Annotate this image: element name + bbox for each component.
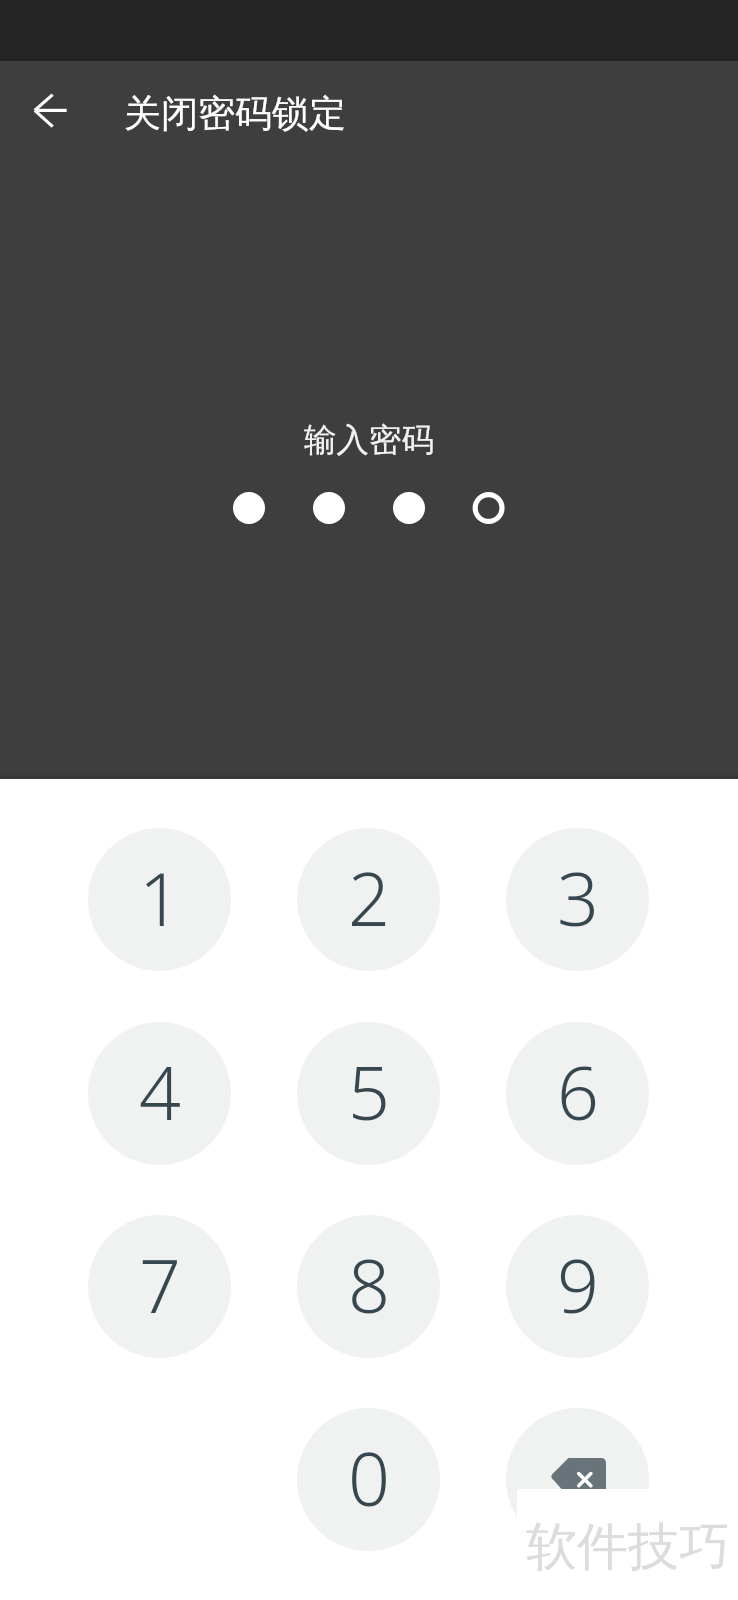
staticText: 7 (139, 1234, 181, 1334)
button[interactable]: 9 (506, 1215, 649, 1358)
button[interactable]: 6 (506, 1022, 649, 1165)
staticText: 4 (139, 1041, 181, 1141)
staticText: 2 (348, 847, 390, 947)
button[interactable]: 8 (297, 1215, 440, 1358)
button[interactable]: 4 (88, 1022, 231, 1165)
button[interactable]: 0 (297, 1408, 440, 1551)
button[interactable]: Backspace (506, 1408, 649, 1551)
staticText: 1 (139, 847, 181, 947)
staticText: 0 (348, 1427, 390, 1527)
staticText: 软件技巧 (526, 1515, 730, 1579)
staticText: 3 (557, 847, 599, 947)
staticText: 关闭密码锁定 (124, 90, 346, 137)
button[interactable]: 7 (88, 1215, 231, 1358)
staticText: 9 (557, 1234, 599, 1334)
button[interactable]: 3 (506, 828, 649, 971)
staticText: 8 (348, 1234, 390, 1334)
button[interactable]: 2 (297, 828, 440, 971)
staticText: 输入密码 (0, 420, 738, 461)
staticText: 6 (557, 1041, 599, 1141)
button[interactable]: 5 (297, 1022, 440, 1165)
button[interactable]: Back (19, 79, 83, 143)
button[interactable]: 1 (88, 828, 231, 971)
staticText: 5 (348, 1041, 390, 1141)
